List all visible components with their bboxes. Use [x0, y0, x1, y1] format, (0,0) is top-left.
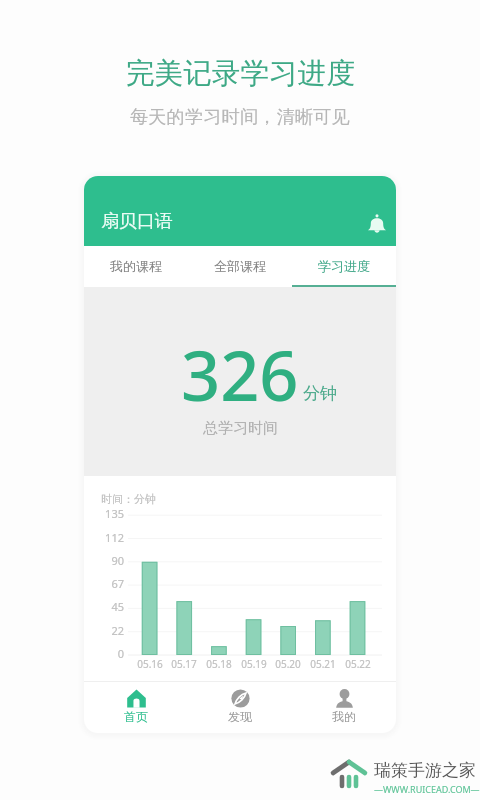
button[interactable]: 发现 [188, 682, 292, 724]
button[interactable]: 全部课程 [188, 246, 292, 287]
button[interactable]: 首页 [84, 682, 188, 724]
staticText: —WWW.RUICEAD.COM— [374, 783, 480, 795]
staticText: 05.21 [303, 657, 343, 671]
button[interactable]: 学习进度 [292, 246, 396, 287]
staticText: 05.17 [164, 657, 204, 671]
staticText: 22 [88, 623, 124, 638]
staticText: 瑞策手游之家 [374, 760, 476, 781]
staticText: 全部课程 [214, 258, 266, 274]
staticText: 05.20 [268, 657, 308, 671]
staticText: 05.22 [338, 657, 378, 671]
staticText: 67 [88, 576, 124, 591]
staticText: 学习进度 [318, 258, 370, 274]
staticText: 326 [181, 328, 299, 421]
staticText: 45 [88, 599, 124, 614]
button[interactable]: 我的 [292, 682, 396, 724]
button[interactable]: 我的课程 [84, 246, 188, 287]
staticText: 05.18 [199, 657, 239, 671]
staticText: 完美记录学习进度 [126, 55, 355, 91]
staticText: 时间：分钟 [101, 492, 156, 506]
staticText: 扇贝口语 [101, 210, 173, 233]
staticText: 总学习时间 [203, 419, 278, 438]
button[interactable]: Notifications [364, 211, 390, 237]
staticText: 135 [88, 506, 124, 521]
staticText: 发现 [228, 709, 252, 724]
staticText: 90 [88, 553, 124, 568]
staticText: 我的 [332, 709, 356, 724]
staticText: 05.16 [130, 657, 170, 671]
staticText: 0 [88, 646, 124, 661]
staticText: 我的课程 [110, 258, 162, 274]
staticText: 每天的学习时间，清晰可见 [130, 105, 350, 128]
staticText: 112 [88, 530, 124, 545]
staticText: 分钟 [303, 383, 337, 404]
staticText: 首页 [124, 709, 148, 724]
staticText: 05.19 [234, 657, 274, 671]
